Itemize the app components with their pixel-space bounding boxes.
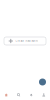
staticText: Create new event: [15, 39, 38, 43]
button[interactable]: Create new event: [4, 37, 46, 45]
button[interactable]: Compose: [39, 78, 46, 85]
button[interactable]: Home: [5, 93, 8, 96]
button[interactable]: Notifications: [30, 93, 33, 96]
button[interactable]: Profile: [42, 93, 45, 96]
button[interactable]: Search: [17, 93, 20, 96]
